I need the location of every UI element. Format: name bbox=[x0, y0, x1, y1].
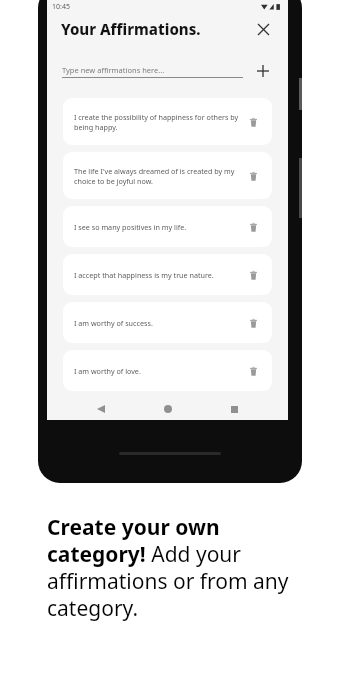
button[interactable]: Delete bbox=[243, 361, 263, 381]
button[interactable]: Back bbox=[88, 398, 114, 420]
staticText: Your Affirmations. bbox=[61, 19, 201, 39]
button[interactable]: Delete bbox=[243, 313, 263, 333]
staticText: I create the possibility of happiness fo… bbox=[74, 112, 243, 132]
button[interactable]: Delete bbox=[243, 166, 263, 186]
button[interactable]: Close bbox=[252, 18, 274, 40]
button[interactable]: I create the possibility of happiness fo… bbox=[63, 98, 272, 145]
staticText: I accept that happiness is my true natur… bbox=[74, 270, 243, 280]
button[interactable]: Type new affirmations here... bbox=[62, 65, 243, 78]
staticText: 10:45 bbox=[52, 2, 70, 12]
button[interactable]: Home bbox=[155, 398, 181, 420]
button[interactable]: Recents bbox=[221, 398, 247, 420]
staticText: The life I've always dreamed of is creat… bbox=[74, 166, 243, 186]
button[interactable]: Delete bbox=[243, 265, 263, 285]
staticText: Type new affirmations here... bbox=[62, 65, 165, 75]
button[interactable]: Delete bbox=[243, 217, 263, 237]
staticText: I see so many positives in my life. bbox=[74, 222, 243, 232]
button[interactable]: I accept that happiness is my true natur… bbox=[63, 254, 272, 295]
button[interactable]: I am worthy of love. bbox=[63, 350, 272, 391]
button[interactable]: Delete bbox=[243, 112, 263, 132]
staticText: I am worthy of success. bbox=[74, 318, 243, 328]
button[interactable]: I am worthy of success. bbox=[63, 302, 272, 343]
button[interactable]: Add affirmation bbox=[253, 61, 273, 81]
staticText: Create your own category! Add your affir… bbox=[47, 513, 307, 622]
staticText: I am worthy of love. bbox=[74, 366, 243, 376]
button[interactable]: I see so many positives in my life. bbox=[63, 206, 272, 247]
button[interactable]: The life I've always dreamed of is creat… bbox=[63, 152, 272, 199]
